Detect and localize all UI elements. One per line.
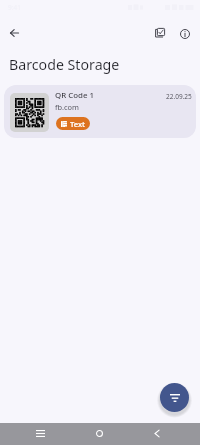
button[interactable]: Filter	[160, 383, 189, 412]
button[interactable]: Select all	[150, 23, 170, 43]
button[interactable]: Back	[149, 426, 164, 441]
staticText: Text	[70, 119, 85, 129]
button[interactable]: Info	[175, 24, 195, 44]
button[interactable]: Home	[92, 426, 107, 441]
button[interactable]: Text	[56, 117, 90, 130]
staticText: fb.com	[55, 102, 79, 112]
staticText: QR Code 1	[55, 90, 95, 101]
staticText: 22.09.25	[166, 92, 192, 101]
button[interactable]: Back	[4, 23, 24, 43]
button[interactable]: Recents	[33, 426, 48, 441]
button[interactable]: QR Code 1	[4, 85, 196, 138]
staticText: Barcode Storage	[9, 55, 120, 74]
